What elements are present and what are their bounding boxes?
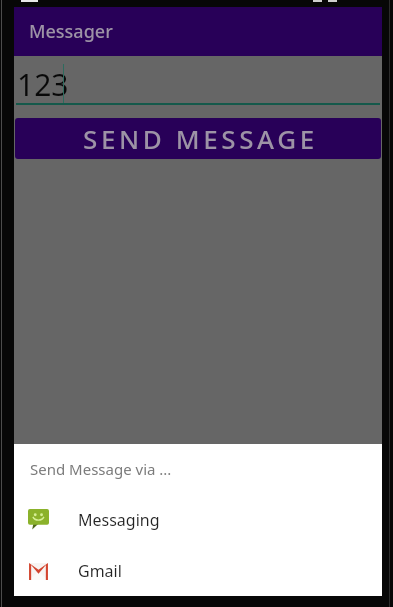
button[interactable]: Gmail [14,550,382,588]
button[interactable]: SEND MESSAGE [15,118,381,159]
staticText: Messaging [78,509,160,531]
staticText: Gmail [78,560,122,582]
button[interactable]: 123 [16,63,380,105]
other: Gmail [28,561,49,582]
staticText: Messager [29,19,113,44]
staticText: Send Message via ... [30,459,172,479]
button[interactable]: Messaging [14,499,382,537]
staticText: SEND MESSAGE [83,121,318,156]
staticText: 123 [17,64,69,105]
other: Messaging [28,509,49,530]
